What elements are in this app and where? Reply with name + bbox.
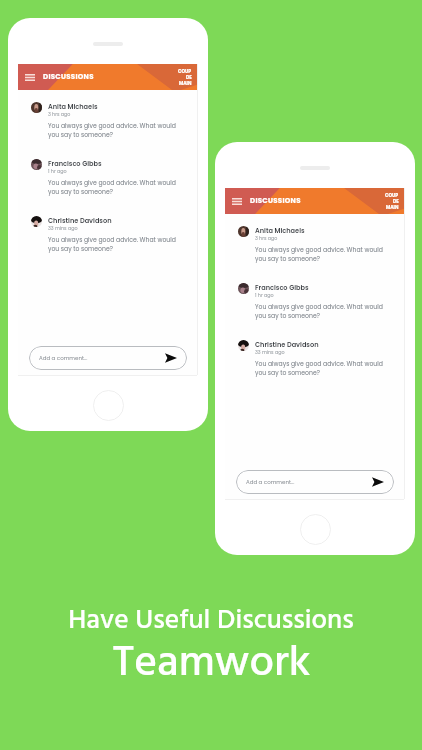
button[interactable]: Francisco Gibbs [225,271,404,328]
staticText: Christine Davidson [48,216,112,225]
button[interactable]: Add a comment... [236,470,394,494]
button[interactable]: Anita Michaels [18,90,197,147]
staticText: COUP [178,68,192,74]
staticText: 3 hrs ago [255,235,278,242]
staticText: You always give good advice. What would … [255,360,389,377]
button[interactable]: Christine Davidson [225,328,404,385]
button[interactable]: Christine Davidson [18,204,197,261]
staticText: Teamwork [112,629,311,699]
staticText: 33 mins ago [48,225,78,232]
button[interactable]: Francisco Gibbs [18,147,197,204]
staticText: DE [393,198,399,204]
staticText: You always give good advice. What would … [48,122,182,139]
staticText: Add a comment... [246,478,295,486]
staticText: 3 hrs ago [48,111,71,118]
staticText: DISCUSSIONS [43,72,94,82]
staticText: Anita Michaels [255,226,305,235]
staticText: COUP [385,192,399,198]
staticText: MAIN [179,80,192,86]
staticText: DISCUSSIONS [250,196,301,206]
button[interactable]: Anita Michaels [225,214,404,271]
staticText: DE [186,74,192,80]
staticText: Anita Michaels [48,102,98,111]
staticText: 1 hr ago [48,168,67,175]
staticText: MAIN [386,204,399,210]
staticText: You always give good advice. What would … [48,236,182,253]
staticText: You always give good advice. What would … [255,246,389,263]
staticText: 33 mins ago [255,349,285,356]
button[interactable]: Menu [22,70,37,85]
staticText: Francisco Gibbs [255,283,309,292]
staticText: 1 hr ago [255,292,274,299]
staticText: Have Useful Discussions [68,599,354,643]
staticText: You always give good advice. What would … [255,303,389,320]
staticText: Francisco Gibbs [48,159,102,168]
staticText: You always give good advice. What would … [48,179,182,196]
staticText: Christine Davidson [255,340,319,349]
button[interactable]: Menu [229,194,244,209]
staticText: Add a comment... [39,354,88,362]
button[interactable]: Add a comment... [29,346,187,370]
